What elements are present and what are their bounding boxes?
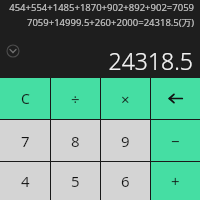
staticText: 454+554+1485+1870+902+892+902=7059 — [5, 1, 194, 14]
staticText: ÷ — [71, 89, 80, 109]
staticText: 9 — [121, 131, 130, 151]
staticText: + — [171, 171, 180, 191]
staticText: × — [121, 89, 130, 109]
staticText: 24318.5 — [108, 45, 193, 76]
staticText: 5 — [71, 171, 80, 191]
button[interactable]: C — [0, 78, 50, 119]
button[interactable]: Backspace — [151, 78, 200, 119]
staticText: 7 — [21, 131, 30, 151]
staticText: 8 — [71, 131, 80, 151]
button[interactable]: − — [151, 120, 200, 161]
button[interactable]: 6 — [101, 162, 150, 200]
button[interactable]: 7 — [0, 120, 50, 161]
button[interactable]: ÷ — [51, 78, 100, 119]
staticText: 6 — [121, 171, 130, 191]
button[interactable]: 9 — [101, 120, 150, 161]
staticText: 4 — [21, 171, 30, 191]
button[interactable]: × — [101, 78, 150, 119]
staticText: 7059+14999.5+260+2000=24318.5(万) — [5, 16, 194, 29]
button[interactable]: 4 — [0, 162, 50, 200]
staticText: C — [21, 89, 30, 108]
button[interactable]: 8 — [51, 120, 100, 161]
button[interactable]: Expand calculation history — [6, 44, 20, 58]
button[interactable]: 5 — [51, 162, 100, 200]
button[interactable]: + — [151, 162, 200, 200]
staticText: − — [171, 131, 180, 151]
